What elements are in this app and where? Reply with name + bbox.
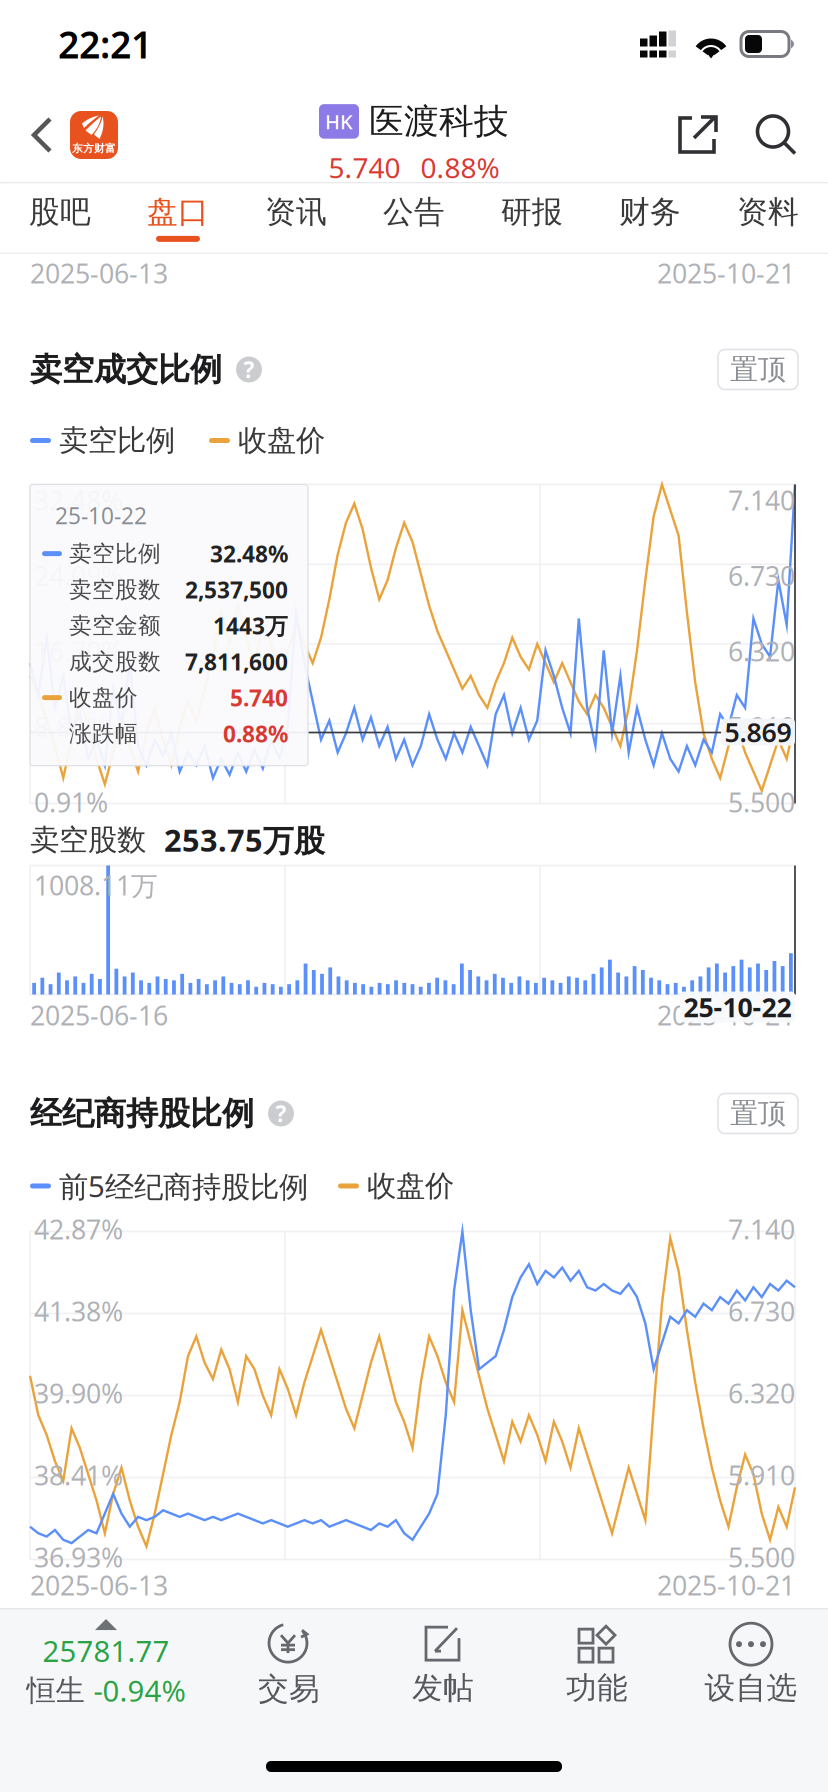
staticText: 财务 — [619, 193, 681, 231]
staticText: 22:21 — [58, 19, 152, 69]
staticText: HK — [325, 108, 353, 135]
staticText: 置顶 — [730, 352, 786, 387]
staticText: 6.320 — [728, 1375, 795, 1411]
staticText: 5.500 — [728, 784, 795, 820]
staticText: 39.90% — [34, 1375, 123, 1411]
staticText: 资料 — [737, 193, 799, 231]
staticText: 1443万 — [213, 611, 288, 641]
button[interactable]: 股吧 — [1, 183, 119, 251]
staticText: 2025-10-21 — [657, 997, 795, 1033]
staticText: 经纪商持股比例 — [30, 1094, 254, 1133]
staticText: 收盘价 — [69, 684, 138, 711]
staticText: 2025-06-13 — [30, 1567, 168, 1603]
staticText: 公告 — [383, 193, 445, 231]
staticText: 资讯 — [265, 193, 327, 231]
button[interactable]: 发帖 — [366, 1609, 520, 1719]
staticText: 卖空成交比例 — [30, 350, 222, 389]
staticText: 股吧 — [29, 193, 91, 231]
staticText: 研报 — [501, 193, 563, 231]
staticText: 0.88% — [223, 719, 288, 749]
staticText: 5.740 — [328, 149, 400, 186]
staticText: 36.93% — [34, 1539, 123, 1575]
staticText: 东方财富 — [72, 142, 116, 155]
button[interactable]: 设自选 — [674, 1609, 828, 1719]
button[interactable]: 置顶 — [718, 1093, 798, 1133]
button[interactable]: 盘口 — [119, 183, 237, 251]
button[interactable]: 置顶 — [718, 349, 798, 389]
staticText: 5.740 — [230, 683, 288, 713]
staticText: 41.38% — [34, 1293, 123, 1329]
staticText: 32.48% — [210, 539, 288, 569]
staticText: 32.48% — [34, 482, 123, 518]
staticText: 25-10-22 — [683, 989, 791, 1025]
button[interactable]: Share — [664, 88, 733, 182]
staticText: 2025-06-16 — [30, 997, 168, 1033]
staticText: 盘口 — [147, 193, 209, 231]
staticText: ? — [275, 1098, 286, 1128]
staticText: 卖空比例 — [59, 422, 175, 458]
staticText: 2025-10-21 — [657, 255, 795, 291]
button[interactable]: 资料 — [709, 183, 827, 251]
staticText: 16.70% — [34, 633, 123, 669]
staticText: 医渡科技 — [369, 100, 509, 143]
staticText: 8.80% — [34, 709, 108, 744]
staticText: 卖空金额 — [69, 612, 161, 639]
button[interactable]: 研报 — [473, 183, 591, 251]
staticText: 7.140 — [728, 482, 795, 518]
staticText: 发帖 — [412, 1669, 474, 1707]
button[interactable]: 25781.77 — [0, 1609, 212, 1719]
staticText: 6.730 — [728, 558, 795, 593]
staticText: 25781.77 — [42, 1631, 169, 1670]
staticText: 253.75万股 — [164, 819, 325, 860]
button[interactable]: 资讯 — [237, 183, 355, 251]
staticText: 恒生 — [26, 1672, 84, 1708]
staticText: 24.09% — [34, 558, 123, 593]
staticText: 6.320 — [728, 633, 795, 669]
staticText: 成交股数 — [69, 648, 161, 675]
staticText: 5.910 — [728, 1457, 795, 1493]
button[interactable]: 交易 — [212, 1609, 366, 1719]
staticText: 38.41% — [34, 1457, 123, 1493]
staticText: 5.500 — [728, 1539, 795, 1575]
staticText: 0.91% — [34, 784, 108, 820]
button[interactable]: 财务 — [591, 183, 709, 251]
staticText: 收盘价 — [367, 1168, 454, 1204]
staticText: 卖空股数 — [69, 576, 161, 603]
staticText: 前5经纪商持股比例 — [59, 1166, 308, 1205]
staticText: 1008.11万 — [34, 867, 158, 903]
button[interactable]: 公告 — [355, 183, 473, 251]
staticText: 设自选 — [704, 1669, 797, 1707]
staticText: 涨跌幅 — [69, 720, 138, 747]
staticText: 卖空比例 — [69, 540, 161, 567]
staticText: 功能 — [566, 1669, 628, 1707]
staticText: 6.730 — [728, 1293, 795, 1329]
staticText: 2,537,500 — [185, 575, 288, 605]
staticText: 5.910 — [728, 709, 795, 744]
staticText: 交易 — [258, 1670, 320, 1708]
staticText: 5.869 — [724, 714, 791, 750]
staticText: 0.88% — [420, 149, 499, 186]
staticText: 42.87% — [34, 1211, 123, 1247]
button[interactable]: Back — [0, 88, 132, 182]
staticText: 2025-10-21 — [657, 1567, 795, 1603]
staticText: 卖空股数 — [30, 822, 146, 858]
staticText: 置顶 — [730, 1096, 786, 1131]
button[interactable]: 功能 — [520, 1609, 674, 1719]
staticText: -0.94% — [93, 1671, 185, 1710]
staticText: 2025-06-13 — [30, 255, 168, 291]
staticText: ? — [243, 354, 254, 384]
staticText: 7.140 — [728, 1211, 795, 1247]
staticText: 收盘价 — [238, 422, 325, 458]
staticText: 25-10-22 — [55, 500, 147, 531]
button[interactable]: Search — [733, 88, 828, 182]
staticText: 7,811,600 — [185, 647, 288, 677]
